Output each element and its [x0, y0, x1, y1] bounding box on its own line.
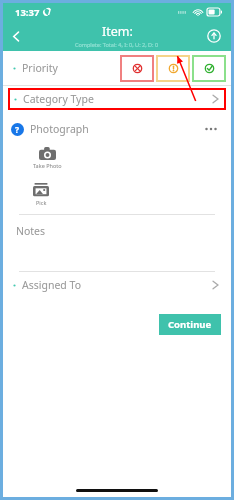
staticText: Pick [36, 199, 47, 206]
staticText: Priority [22, 61, 58, 75]
button[interactable]: Take Photo [33, 147, 62, 169]
button[interactable]: More options [201, 119, 221, 139]
staticText: Assigned To [22, 278, 81, 292]
button[interactable]: Assigned To [3, 272, 231, 298]
button[interactable]: Priority option [120, 55, 154, 82]
button[interactable]: Continue [159, 314, 221, 335]
staticText: Notes [16, 224, 46, 238]
button[interactable]: Priority option [156, 55, 190, 82]
staticText: Take Photo [33, 162, 62, 169]
button[interactable]: Category Type [8, 88, 226, 110]
staticText: 13:37 [15, 6, 40, 19]
button[interactable]: Help [11, 123, 24, 136]
button[interactable]: Back [3, 23, 29, 49]
button[interactable]: Pick [33, 183, 49, 206]
staticText: ? [15, 124, 20, 136]
staticText: Complete: Total: 4, I: 0, U: 2, D: 0 [75, 41, 159, 48]
button[interactable]: Priority [3, 51, 231, 85]
button[interactable]: Notes [3, 215, 231, 271]
staticText: Category Type [23, 92, 94, 106]
button[interactable]: Priority option [192, 55, 226, 82]
staticText: Item: [102, 23, 133, 40]
button[interactable]: Upload [203, 25, 225, 47]
staticText: Continue [168, 318, 212, 331]
staticText: Photograph [30, 122, 89, 136]
